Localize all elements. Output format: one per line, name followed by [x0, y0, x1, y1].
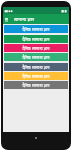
- button[interactable]: दैनिक सामान्य ज्ञान: [4, 53, 68, 61]
- button[interactable]: दैनिक सामान्य ज्ञान: [4, 25, 68, 33]
- button[interactable]: दैनिक सामान्य ज्ञान: [4, 35, 68, 43]
- button[interactable]: दैनिक सामान्य ज्ञान: [4, 72, 68, 80]
- button[interactable]: दैनिक सामान्य ज्ञान: [4, 44, 68, 52]
- staticText: दैनिक सामान्य ज्ञान: [22, 37, 50, 42]
- staticText: दैनिक सामान्य ज्ञान: [22, 83, 50, 88]
- staticText: दैनिक सामान्य ज्ञान: [22, 65, 50, 70]
- button[interactable]: दैनिक सामान्य ज्ञान: [4, 81, 68, 89]
- staticText: दैनिक सामान्य ज्ञान: [22, 27, 50, 32]
- staticText: दैनिक सामान्य ज्ञान: [22, 55, 50, 60]
- button[interactable]: दैनिक सामान्य ज्ञान: [4, 63, 68, 71]
- staticText: दैनिक सामान्य ज्ञान: [22, 74, 50, 79]
- staticText: सामान्य ज्ञान: [14, 16, 35, 22]
- staticText: दैनिक सामान्य ज्ञान: [22, 46, 50, 51]
- button[interactable]: Menu: [4, 17, 9, 22]
